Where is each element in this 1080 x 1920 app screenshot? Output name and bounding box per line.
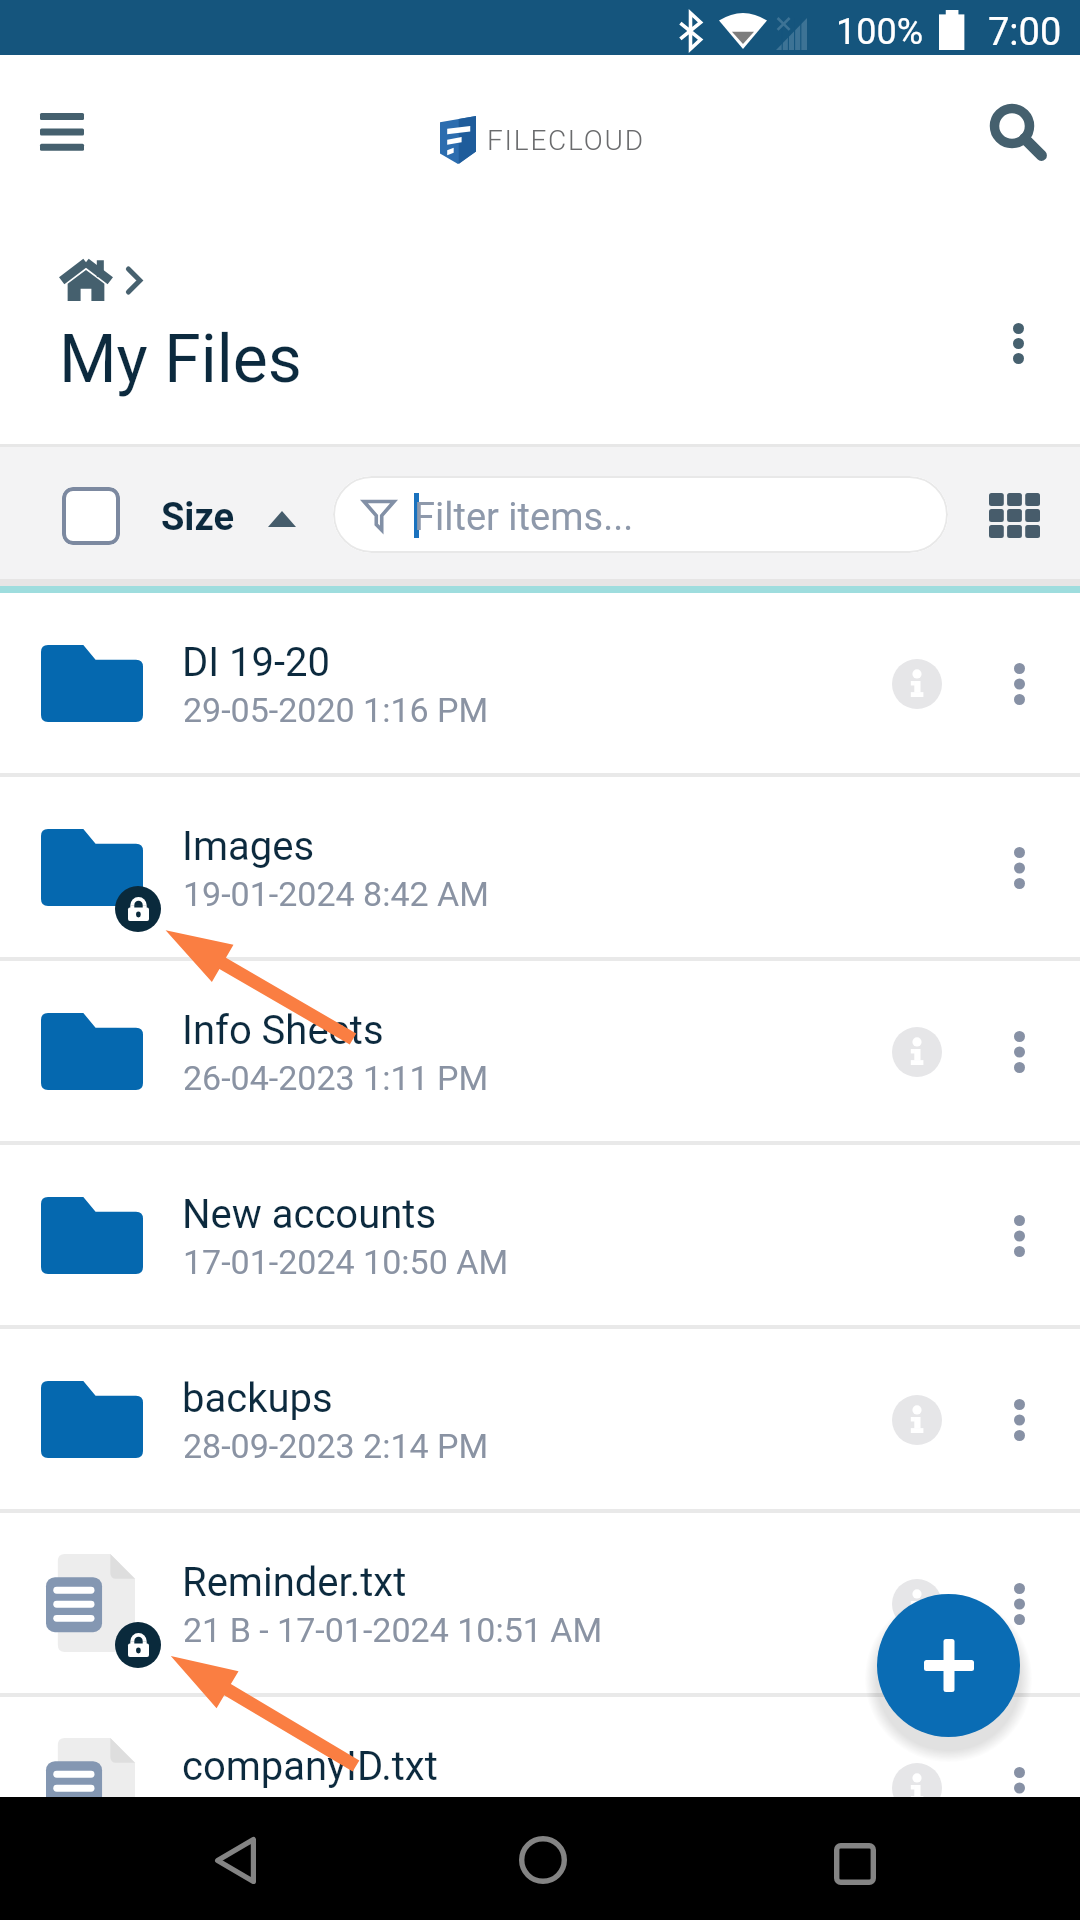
button[interactable]: backups (0, 1329, 1080, 1509)
button[interactable]: More (983, 1016, 1055, 1088)
staticText: FILECLOUD (487, 124, 645, 157)
button[interactable]: Menu (20, 90, 104, 174)
staticText: New accounts (182, 1191, 437, 1238)
button[interactable]: Grid view (979, 480, 1049, 550)
staticText: Reminder.txt (182, 1559, 407, 1606)
staticText: My Files (59, 321, 302, 398)
staticText: 19-01-2024 8:42 AM (183, 874, 489, 914)
staticText: 7:00 (988, 10, 1062, 55)
staticText: 17-01-2024 10:50 AM (183, 1242, 509, 1282)
button[interactable]: Info Sheets (0, 961, 1080, 1141)
button[interactable]: More (983, 832, 1055, 904)
button[interactable]: Filter items... (333, 476, 948, 553)
button[interactable]: Reminder.txt (0, 1513, 1080, 1693)
button[interactable]: Home (498, 1815, 588, 1905)
staticText: 21 B - 17-01-2024 10:51 AM (183, 1610, 603, 1650)
staticText: DI 19-20 (182, 639, 331, 686)
staticText: backups (182, 1375, 333, 1422)
staticText: Size (161, 495, 235, 540)
staticText: 26-04-2023 1:11 PM (183, 1058, 489, 1098)
button[interactable]: More (983, 1568, 1055, 1640)
button[interactable]: More (983, 1384, 1055, 1456)
staticText: 28-09-2023 2:14 PM (183, 1426, 489, 1466)
button[interactable]: DI 19-20 (0, 593, 1080, 773)
button[interactable]: Info (881, 1016, 953, 1088)
button[interactable]: Info (881, 1568, 953, 1640)
staticText: Images (182, 823, 315, 870)
staticText: 100% (836, 11, 924, 53)
button[interactable]: More options (978, 303, 1058, 383)
staticText: 29-05-2020 1:16 PM (183, 690, 489, 730)
button[interactable]: Recents (810, 1819, 900, 1909)
button[interactable]: New accounts (0, 1145, 1080, 1325)
staticText: Info Sheets (182, 1007, 384, 1054)
button[interactable]: Select all (62, 487, 120, 545)
button[interactable]: companyID.txt (0, 1697, 1080, 1877)
button[interactable]: Info (881, 648, 953, 720)
button[interactable]: Info (881, 1752, 953, 1824)
button[interactable]: Info (881, 1384, 953, 1456)
staticText: companyID.txt (182, 1743, 438, 1790)
button[interactable]: Search (972, 86, 1062, 176)
button[interactable]: Images (0, 777, 1080, 957)
button[interactable]: More (983, 1200, 1055, 1272)
staticText: Filter items... (414, 495, 634, 540)
button[interactable]: Back (190, 1815, 280, 1905)
button[interactable]: Add (877, 1594, 1020, 1737)
button[interactable]: More (983, 648, 1055, 720)
button[interactable]: More (983, 1752, 1055, 1824)
button[interactable]: Size (155, 481, 305, 549)
